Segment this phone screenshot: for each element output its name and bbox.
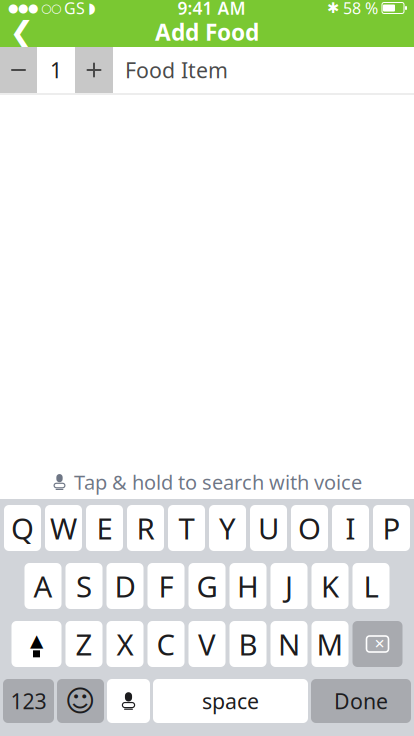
button[interactable]: X — [106, 621, 143, 667]
staticText: W — [50, 508, 77, 547]
button[interactable]: F — [147, 563, 184, 609]
staticText: S — [76, 566, 92, 605]
staticText: Add Food — [155, 17, 259, 47]
staticText: ✕ — [374, 636, 385, 651]
button[interactable]: L — [352, 563, 389, 609]
button[interactable]: space — [153, 679, 308, 723]
staticText: U — [258, 508, 279, 547]
button[interactable]: V — [188, 621, 225, 667]
staticText: M — [316, 624, 343, 663]
button[interactable]: T — [168, 505, 205, 551]
staticText: G — [196, 566, 217, 605]
staticText: Q — [11, 508, 34, 547]
button[interactable]: Decrease quantity — [0, 47, 37, 93]
staticText: 9:41 AM — [177, 0, 245, 19]
button[interactable]: D — [106, 563, 143, 609]
button[interactable]: Shift — [11, 621, 61, 667]
button[interactable]: J — [270, 563, 307, 609]
button[interactable]: Q — [4, 505, 41, 551]
staticText: Food Item — [125, 56, 228, 84]
staticText: A — [33, 566, 52, 605]
staticText: Tap & hold to search with voice — [74, 469, 362, 495]
staticText: Y — [219, 508, 236, 547]
staticText: B — [238, 624, 257, 663]
staticText: R — [136, 508, 154, 547]
staticText: K — [321, 566, 339, 605]
button[interactable]: O — [291, 505, 328, 551]
button[interactable]: Y — [209, 505, 246, 551]
staticText: ❮ — [9, 15, 34, 49]
staticText: GS — [64, 0, 85, 19]
button[interactable]: M — [311, 621, 348, 667]
staticText: 58 % — [343, 0, 378, 19]
staticText: ▲ — [30, 631, 43, 650]
staticText: ◗ — [88, 0, 96, 16]
staticText: I — [345, 508, 355, 547]
button[interactable]: S — [65, 563, 102, 609]
staticText: L — [363, 566, 378, 605]
staticText: C — [156, 624, 175, 663]
staticText: ✱ — [327, 0, 339, 16]
staticText: ☺ — [65, 684, 96, 718]
staticText: 123 — [10, 687, 46, 715]
button[interactable]: A — [24, 563, 61, 609]
staticText: Done — [334, 687, 388, 715]
staticText: D — [114, 566, 135, 605]
staticText: Z — [75, 624, 92, 663]
button[interactable]: Increase quantity — [75, 47, 113, 93]
staticText: E — [96, 508, 112, 547]
staticText: ○○ — [41, 1, 61, 15]
button[interactable]: R — [127, 505, 164, 551]
staticText: ●●● — [8, 1, 38, 15]
staticText: J — [285, 566, 293, 605]
button[interactable]: B — [229, 621, 266, 667]
staticText: 1 — [50, 56, 62, 84]
button[interactable]: Food Item — [113, 47, 263, 93]
staticText: X — [116, 624, 133, 663]
button[interactable]: Z — [65, 621, 102, 667]
button[interactable]: Tap & hold to search with voice — [0, 465, 414, 499]
button[interactable]: Delete — [352, 621, 402, 667]
button[interactable]: H — [229, 563, 266, 609]
button[interactable]: K — [311, 563, 348, 609]
staticText: O — [298, 508, 321, 547]
button[interactable]: Done — [311, 679, 411, 723]
staticText: T — [178, 508, 194, 547]
staticText: N — [278, 624, 300, 663]
button[interactable]: Dictation — [107, 679, 150, 723]
staticText: space — [202, 687, 259, 715]
staticText: H — [237, 566, 259, 605]
button[interactable]: P — [373, 505, 410, 551]
staticText: F — [158, 566, 173, 605]
button[interactable]: 123 — [3, 679, 54, 723]
button[interactable]: W — [45, 505, 82, 551]
button[interactable]: Emoji — [57, 679, 104, 723]
button[interactable]: C — [147, 621, 184, 667]
button[interactable]: Back — [0, 17, 44, 47]
staticText: P — [382, 508, 400, 547]
button[interactable]: E — [86, 505, 123, 551]
button[interactable]: U — [250, 505, 287, 551]
button[interactable]: I — [332, 505, 369, 551]
button[interactable]: G — [188, 563, 225, 609]
button[interactable]: N — [270, 621, 307, 667]
staticText: V — [198, 624, 216, 663]
